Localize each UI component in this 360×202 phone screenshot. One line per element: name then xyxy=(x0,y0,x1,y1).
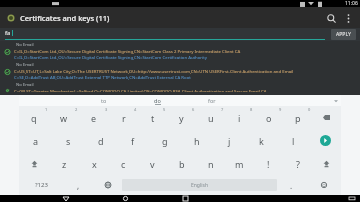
staticText: a xyxy=(33,135,39,147)
button[interactable]: s xyxy=(52,129,85,152)
button[interactable]: Emoji xyxy=(306,175,341,195)
button[interactable]: No Email xyxy=(0,61,360,81)
button[interactable]: Backspace xyxy=(312,106,341,129)
button[interactable]: b xyxy=(167,152,196,175)
button[interactable]: Change language xyxy=(93,175,122,195)
button[interactable]: n xyxy=(196,152,225,175)
staticText: w xyxy=(60,112,68,124)
staticText: f xyxy=(131,135,135,147)
button[interactable]: ! xyxy=(254,152,283,175)
button[interactable]: o xyxy=(254,106,283,129)
staticText: s xyxy=(66,135,71,147)
staticText: fa xyxy=(5,29,11,37)
button[interactable]: k xyxy=(245,129,277,152)
staticText: q xyxy=(31,112,37,124)
staticText: 5 xyxy=(163,107,166,112)
staticText: j xyxy=(228,135,231,147)
staticText: y xyxy=(179,112,184,124)
button[interactable]: r xyxy=(109,106,138,129)
button[interactable]: m xyxy=(225,152,254,175)
staticText: 4 xyxy=(134,107,137,112)
staticText: 7 xyxy=(221,107,224,112)
staticText: t xyxy=(151,112,155,124)
button[interactable]: English xyxy=(122,179,277,191)
button[interactable]: i xyxy=(225,106,254,129)
button[interactable]: v xyxy=(138,152,167,175)
button[interactable]: do xyxy=(151,96,164,106)
button[interactable]: p xyxy=(283,106,312,129)
staticText: APPLY xyxy=(336,31,351,38)
button[interactable]: to xyxy=(98,96,110,105)
staticText: e xyxy=(91,112,97,124)
staticText: g xyxy=(162,135,168,147)
staticText: k xyxy=(259,135,264,147)
staticText: C=IL,O=StartCom Ltd.,OU=Secure Digital C… xyxy=(14,48,241,54)
button[interactable]: z xyxy=(49,152,79,175)
staticText: u xyxy=(208,112,214,124)
button[interactable]: x xyxy=(79,152,109,175)
button[interactable]: t xyxy=(138,106,167,129)
button[interactable]: f xyxy=(117,129,149,152)
staticText: l xyxy=(292,135,295,147)
button[interactable]: Expand suggestions xyxy=(331,96,340,105)
staticText: No Email xyxy=(16,42,34,48)
button[interactable]: Search xyxy=(322,9,340,27)
button[interactable]: ? xyxy=(283,152,312,175)
button[interactable]: Back xyxy=(59,195,72,202)
button[interactable]: Home xyxy=(119,195,132,202)
staticText: n xyxy=(208,158,214,170)
button[interactable]: More options xyxy=(340,10,356,26)
staticText: C=SE,O=AddTrust AB,OU=AddTrust External … xyxy=(14,74,191,80)
staticText: 1 xyxy=(45,107,48,112)
button[interactable]: d xyxy=(85,129,117,152)
button[interactable]: g xyxy=(149,129,181,152)
staticText: ! xyxy=(267,158,270,170)
button[interactable]: . xyxy=(277,175,306,195)
staticText: b xyxy=(179,158,185,170)
button[interactable]: APPLY xyxy=(331,29,356,40)
staticText: to xyxy=(101,97,107,104)
button[interactable]: u xyxy=(196,106,225,129)
button[interactable]: q xyxy=(19,106,49,129)
button[interactable]: a xyxy=(19,129,52,152)
button[interactable]: Shift xyxy=(19,152,49,175)
staticText: 11:06 xyxy=(345,0,358,7)
button[interactable]: Enter xyxy=(309,129,341,152)
staticText: Certificates and keys (11) xyxy=(20,13,110,23)
button[interactable]: Hide keyboard xyxy=(345,195,358,202)
staticText: o xyxy=(266,112,272,124)
staticText: 3 xyxy=(105,107,108,112)
staticText: x xyxy=(92,158,97,170)
button[interactable]: , xyxy=(64,175,93,195)
button[interactable]: c xyxy=(109,152,138,175)
staticText: 2 xyxy=(75,107,78,112)
staticText: d xyxy=(98,135,104,147)
button[interactable]: No Email xyxy=(0,81,360,93)
button[interactable]: No Email xyxy=(0,41,360,61)
staticText: c xyxy=(121,158,126,170)
staticText: No Email xyxy=(16,82,34,88)
staticText: 6 xyxy=(192,107,195,112)
staticText: , xyxy=(77,180,80,191)
button[interactable]: Shift xyxy=(312,152,341,175)
button[interactable]: ?123 xyxy=(19,175,64,195)
staticText: for xyxy=(208,97,216,104)
staticText: C=IL,O=StartCom Ltd.,OU=Secure Digital C… xyxy=(14,54,207,60)
button[interactable]: e xyxy=(79,106,109,129)
button[interactable]: l xyxy=(277,129,309,152)
button[interactable]: j xyxy=(213,129,245,152)
staticText: ? xyxy=(296,158,300,170)
button[interactable]: Recent apps xyxy=(179,195,192,202)
staticText: 8 xyxy=(250,107,253,112)
staticText: p xyxy=(295,112,301,124)
staticText: 9 xyxy=(279,107,282,112)
staticText: C=US,ST=UT,L=Salt Lake City,O=The USERTR… xyxy=(14,68,294,74)
staticText: z xyxy=(62,158,67,170)
button[interactable]: h xyxy=(181,129,213,152)
staticText: ?123 xyxy=(35,181,48,189)
button[interactable]: w xyxy=(49,106,79,129)
button[interactable]: y xyxy=(167,106,196,129)
staticText: do xyxy=(154,97,161,104)
staticText: r xyxy=(122,112,126,124)
button[interactable]: for xyxy=(205,96,219,105)
